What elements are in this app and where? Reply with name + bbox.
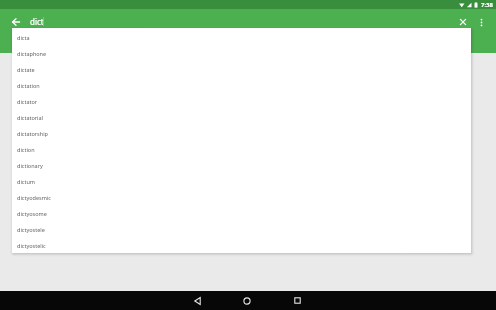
button[interactable]: dictyostele: [12, 221, 471, 237]
button[interactable]: [222, 291, 272, 310]
staticText: 7:38: [481, 1, 493, 9]
button[interactable]: dictator: [12, 93, 471, 109]
staticText: dictate: [17, 66, 35, 73]
button[interactable]: [272, 291, 322, 310]
staticText: dictaphone: [17, 50, 47, 57]
button[interactable]: dictate: [12, 61, 471, 77]
button[interactable]: [455, 14, 471, 30]
button[interactable]: dictyosome: [12, 205, 471, 221]
button[interactable]: dictyostelic: [12, 237, 471, 253]
staticText: dictionary: [17, 162, 43, 169]
button[interactable]: dictatorship: [12, 125, 471, 141]
staticText: dictyostele: [17, 226, 45, 233]
button[interactable]: [474, 14, 488, 30]
button[interactable]: diction: [12, 141, 471, 157]
button[interactable]: dictionary: [12, 157, 471, 173]
staticText: dictum: [17, 178, 35, 185]
staticText: dictatorship: [17, 130, 48, 137]
button[interactable]: dicta: [12, 29, 471, 45]
button[interactable]: dictatorial: [12, 109, 471, 125]
staticText: dictator: [17, 98, 38, 105]
button[interactable]: dictum: [12, 173, 471, 189]
staticText: dictation: [17, 82, 40, 89]
staticText: dicta: [17, 34, 30, 41]
staticText: dictyostelic: [17, 242, 46, 249]
staticText: dictatorial: [17, 114, 44, 121]
button[interactable]: dictation: [12, 77, 471, 93]
button[interactable]: dictaphone: [12, 45, 471, 61]
staticText: dict: [30, 16, 44, 27]
staticText: dictyosome: [17, 210, 47, 217]
staticText: diction: [17, 146, 35, 153]
button[interactable]: [172, 291, 222, 310]
button[interactable]: [7, 13, 25, 30]
staticText: dictyodesmic: [17, 194, 51, 201]
button[interactable]: dictyodesmic: [12, 189, 471, 205]
